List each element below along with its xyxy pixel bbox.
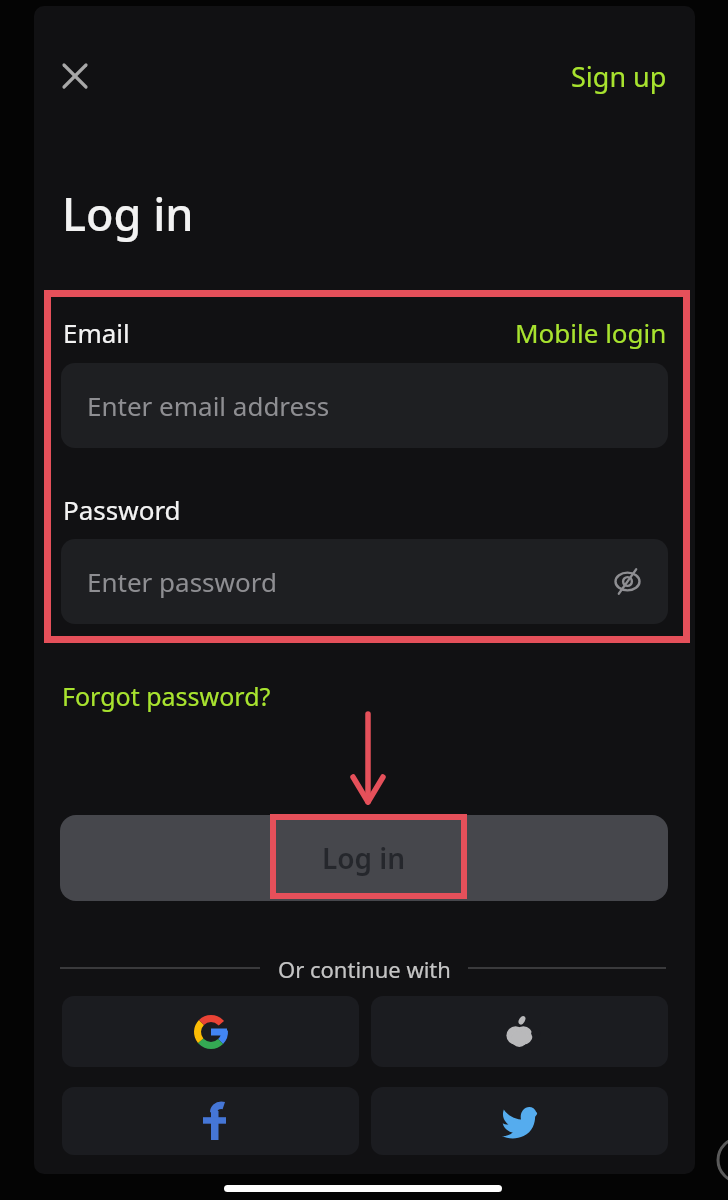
staticText: Sign up — [571, 58, 667, 94]
button[interactable] — [51, 52, 99, 100]
staticText: Log in — [62, 183, 194, 244]
button[interactable]: Enter email address — [61, 363, 668, 448]
staticText: Password — [63, 492, 181, 527]
button[interactable] — [62, 1087, 359, 1155]
button[interactable]: Mobile login — [430, 315, 667, 349]
staticText: Or continue with — [278, 954, 451, 984]
button[interactable] — [62, 996, 359, 1067]
button[interactable]: Sign up — [450, 58, 667, 94]
staticText: Mobile login — [515, 315, 667, 349]
staticText: Forgot password? — [62, 679, 271, 713]
staticText: Enter email address — [87, 388, 330, 423]
staticText: Email — [63, 315, 130, 350]
button[interactable] — [371, 996, 668, 1067]
button[interactable]: Forgot password? — [62, 679, 271, 713]
button[interactable] — [371, 1087, 668, 1155]
button[interactable]: Log in — [60, 815, 668, 901]
staticText: Log in — [322, 839, 406, 877]
staticText: Enter password — [87, 564, 277, 599]
button[interactable]: Enter password — [61, 539, 668, 624]
